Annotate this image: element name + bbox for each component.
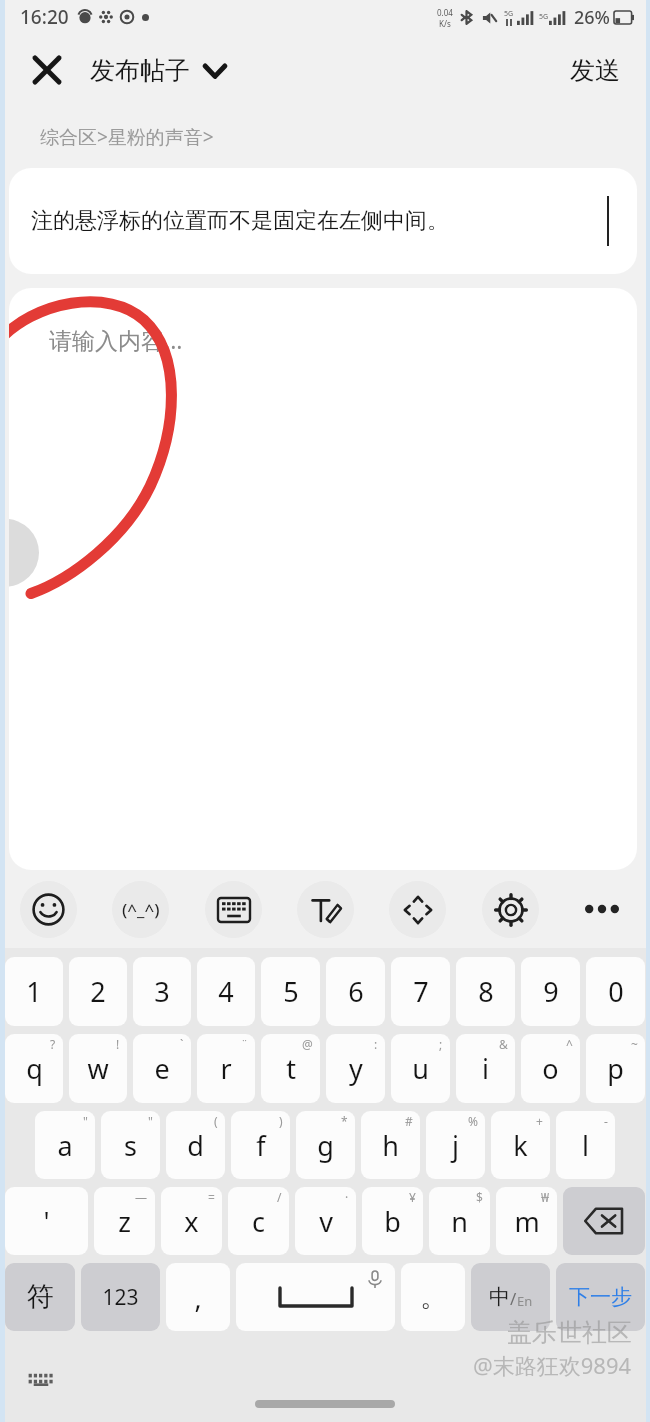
button[interactable]: 6 <box>326 957 385 1026</box>
staticText: u <box>412 1050 429 1087</box>
button[interactable]: v <box>295 1187 356 1255</box>
button[interactable]: Settings <box>482 881 539 938</box>
staticText: w <box>87 1050 109 1087</box>
button[interactable]: Close <box>26 49 68 91</box>
button[interactable]: 符 <box>5 1263 75 1331</box>
button[interactable]: a <box>35 1111 95 1179</box>
button[interactable]: s <box>101 1111 160 1179</box>
button[interactable]: 1 <box>5 957 63 1026</box>
button[interactable]: w <box>69 1034 127 1103</box>
staticText: 8 <box>478 973 494 1010</box>
button[interactable]: Backspace <box>563 1187 645 1255</box>
button[interactable]: o <box>521 1034 580 1103</box>
staticText: 发送 <box>570 55 620 86</box>
staticText: 9 <box>543 973 559 1010</box>
staticText: # <box>405 1113 413 1129</box>
staticText: ~ <box>631 1036 638 1052</box>
button[interactable]: 7 <box>391 957 450 1026</box>
staticText: 3 <box>154 973 170 1010</box>
button[interactable]: 8 <box>456 957 515 1026</box>
staticText: 盖乐世社区 <box>507 1317 632 1348</box>
button[interactable]: 注的悬浮标的位置而不是固定在左侧中间。 <box>9 168 637 274</box>
button[interactable]: Space <box>236 1263 395 1331</box>
button[interactable]: m <box>496 1187 557 1255</box>
staticText: 123 <box>102 1283 139 1312</box>
staticText: : <box>374 1036 378 1052</box>
staticText: ( <box>214 1113 218 1129</box>
button[interactable]: z <box>94 1187 155 1255</box>
button[interactable]: 下一步 <box>556 1263 645 1331</box>
button[interactable]: c <box>228 1187 289 1255</box>
staticText: $ <box>476 1189 483 1205</box>
staticText: · <box>345 1189 349 1205</box>
button[interactable]: u <box>391 1034 450 1103</box>
staticText: 注的悬浮标的位置而不是固定在左侧中间。 <box>31 207 449 235</box>
button[interactable]: i <box>456 1034 515 1103</box>
button[interactable]: Kaomoji <box>112 881 169 938</box>
staticText: 。 <box>420 1280 447 1314</box>
button[interactable]: r <box>197 1034 255 1103</box>
staticText: g <box>317 1127 334 1164</box>
button[interactable]: 123 <box>81 1263 160 1331</box>
button[interactable]: p <box>586 1034 645 1103</box>
button[interactable]: t <box>261 1034 320 1103</box>
button[interactable]: n <box>429 1187 490 1255</box>
button[interactable]: b <box>362 1187 423 1255</box>
button[interactable]: , <box>166 1263 230 1331</box>
staticText: 5 <box>283 973 299 1010</box>
button[interactable]: 9 <box>521 957 580 1026</box>
staticText: z <box>118 1203 131 1240</box>
button[interactable]: f <box>231 1111 290 1179</box>
staticText: a <box>57 1127 73 1164</box>
staticText: k <box>513 1127 528 1164</box>
button[interactable]: 。 <box>401 1263 465 1331</box>
button[interactable]: 5 <box>261 957 320 1026</box>
button[interactable]: 发布帖子 <box>90 55 228 86</box>
staticText: 7 <box>413 973 429 1010</box>
staticText: ₩ <box>541 1189 550 1205</box>
button[interactable]: Chinese English toggle <box>471 1263 550 1331</box>
button[interactable]: h <box>361 1111 420 1179</box>
button[interactable]: 0 <box>586 957 645 1026</box>
button[interactable]: 发送 <box>564 49 626 92</box>
button[interactable]: Hide keyboard <box>24 1362 58 1396</box>
button[interactable]: x <box>161 1187 222 1255</box>
button[interactable]: 4 <box>197 957 255 1026</box>
staticText: 0 <box>608 973 624 1010</box>
button[interactable]: e <box>133 1034 191 1103</box>
button[interactable]: k <box>491 1111 550 1179</box>
staticText: e <box>154 1050 170 1087</box>
button[interactable]: d <box>166 1111 225 1179</box>
staticText: p <box>607 1050 624 1087</box>
button[interactable]: ' <box>5 1187 88 1255</box>
button[interactable]: l <box>556 1111 615 1179</box>
button[interactable]: Handwriting <box>297 881 354 938</box>
button[interactable]: More <box>574 881 630 937</box>
staticText: ` <box>180 1036 184 1052</box>
button[interactable]: 3 <box>133 957 191 1026</box>
button[interactable]: g <box>296 1111 355 1179</box>
button[interactable]: j <box>426 1111 485 1179</box>
staticText: h <box>382 1127 399 1164</box>
button[interactable]: q <box>5 1034 63 1103</box>
staticText: ? <box>50 1036 56 1052</box>
button[interactable]: 综合区>星粉的声音> <box>40 124 214 150</box>
button[interactable]: Keyboard <box>205 881 262 938</box>
staticText: 5G <box>504 9 514 19</box>
button[interactable]: 请输入内容... <box>9 288 637 870</box>
button[interactable]: Resize <box>389 881 446 938</box>
staticText: = <box>208 1189 215 1205</box>
button[interactable]: y <box>326 1034 385 1103</box>
staticText: j <box>452 1127 459 1164</box>
staticText: o <box>542 1050 559 1087</box>
staticText: & <box>499 1036 508 1052</box>
staticText: @末路狂欢9894 <box>473 1350 632 1380</box>
staticText: l <box>582 1127 589 1164</box>
staticText: 26% <box>574 5 610 30</box>
button[interactable]: Emoji <box>20 881 77 938</box>
staticText: v <box>319 1203 333 1240</box>
staticText: 5G <box>539 12 549 22</box>
staticText: 1 <box>26 973 42 1010</box>
staticText: @ <box>302 1036 313 1052</box>
button[interactable]: 2 <box>69 957 127 1026</box>
